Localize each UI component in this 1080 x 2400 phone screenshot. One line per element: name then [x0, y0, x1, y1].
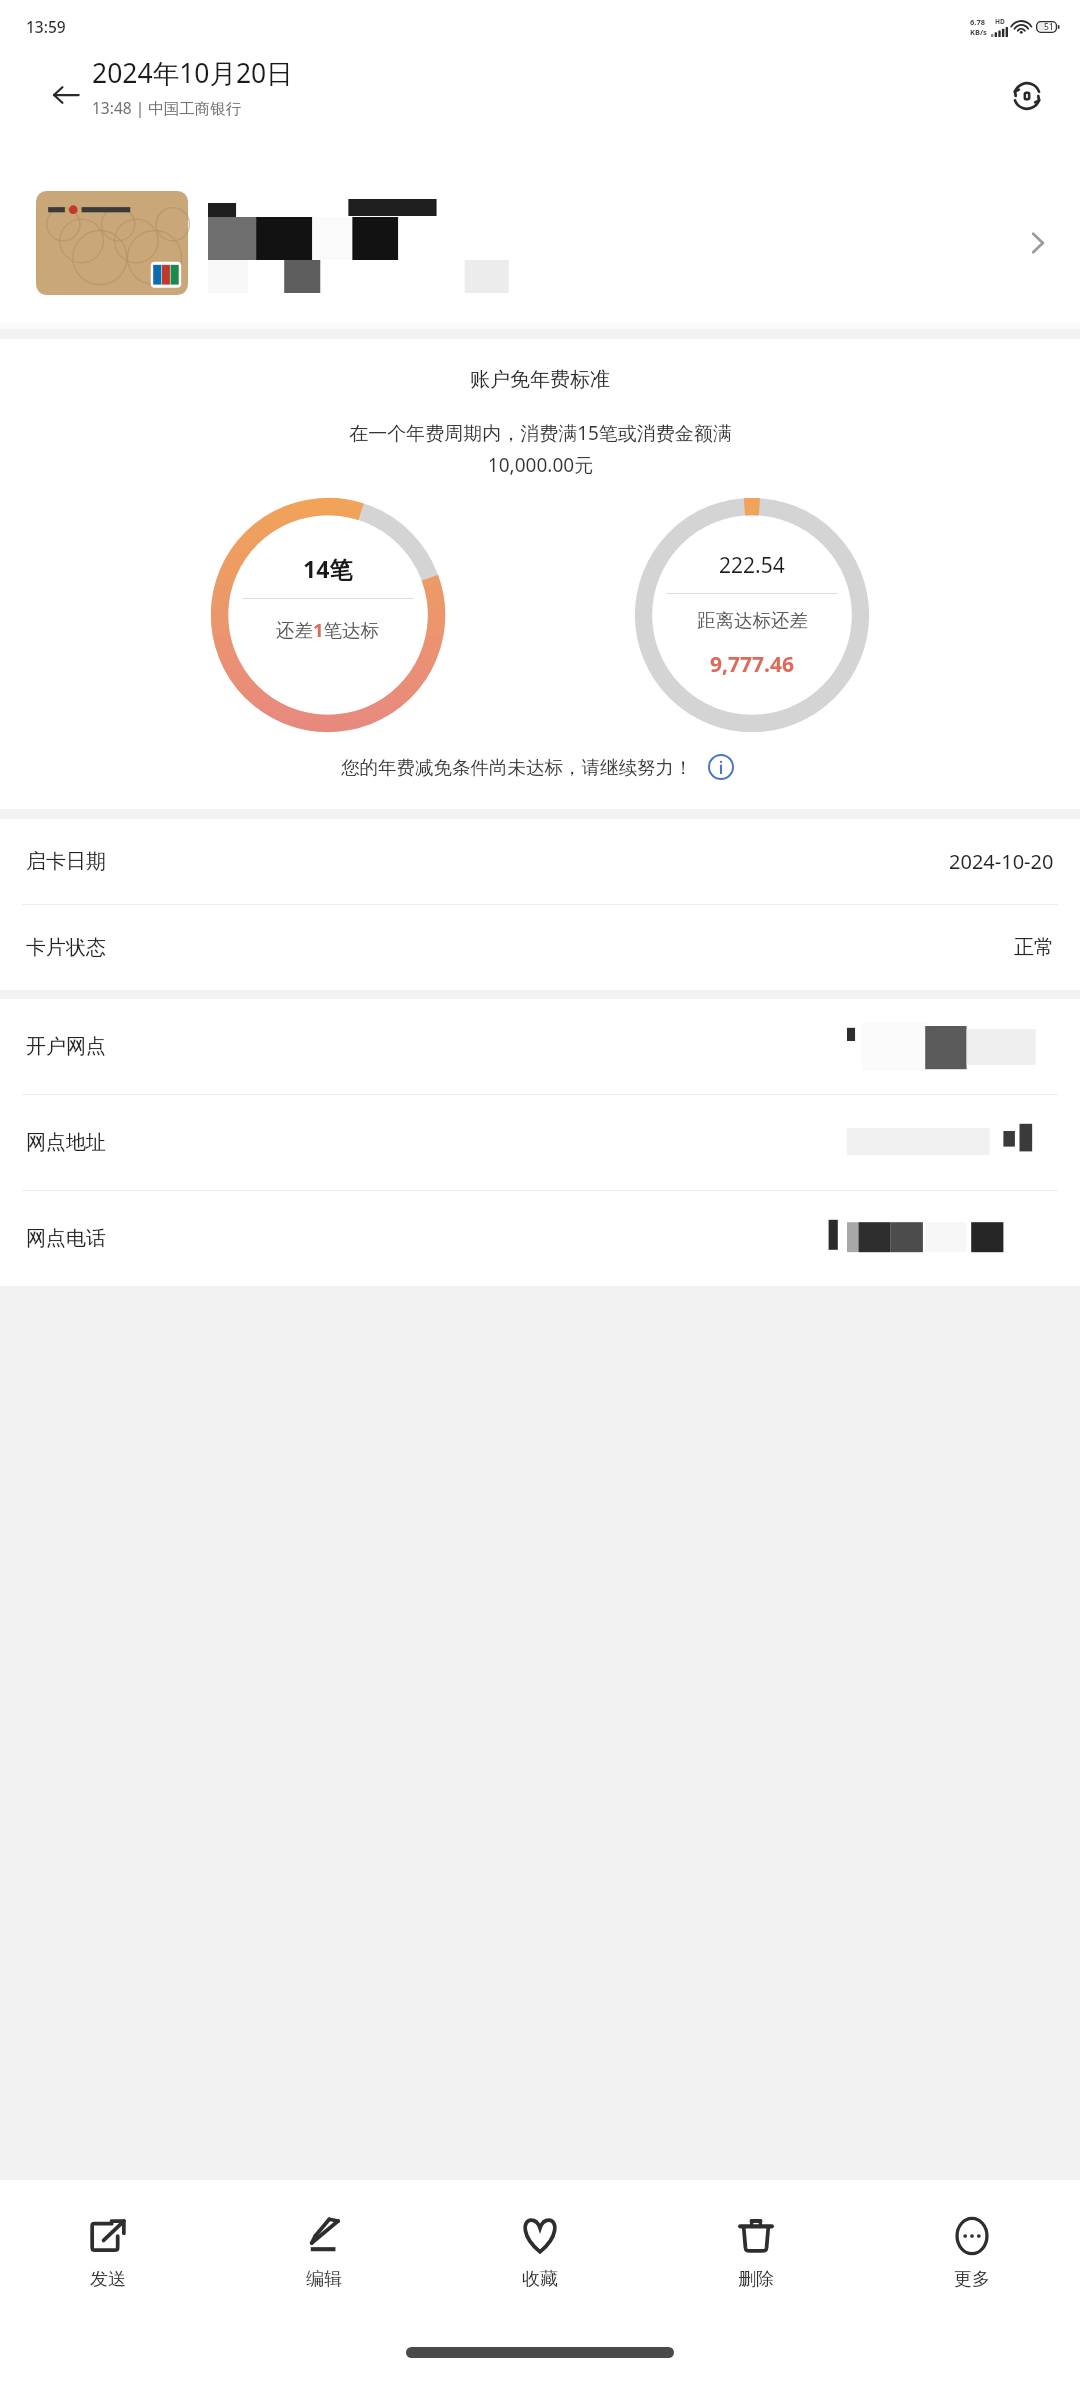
staticText: KB/s	[970, 27, 987, 37]
staticText: 正常	[1014, 935, 1054, 960]
button[interactable]: 返回	[40, 69, 92, 121]
button[interactable]: 收藏	[432, 2206, 648, 2299]
staticText: HD	[995, 17, 1005, 26]
staticText: 2024-10-20	[949, 848, 1054, 875]
button[interactable]: 启卡日期	[0, 819, 1080, 905]
staticText: 启卡日期	[26, 849, 106, 874]
staticText: 您的年费减免条件尚未达标，请继续努力！	[341, 756, 693, 779]
staticText: 2024年10月20日	[92, 55, 293, 91]
staticText: 距离达标还差	[697, 609, 808, 632]
staticText: 发送	[90, 2268, 126, 2291]
button[interactable]: 更多	[864, 2206, 1080, 2299]
staticText: 6.78	[970, 17, 985, 27]
button[interactable]: 编辑	[216, 2206, 432, 2299]
button[interactable]: 卡片状态	[0, 905, 1080, 990]
other: 查看	[1010, 215, 1066, 271]
button[interactable]: 说明	[703, 749, 739, 785]
staticText: 还差1笔达标	[276, 617, 380, 642]
button[interactable]: 删除	[648, 2206, 864, 2299]
staticText: 222.54	[719, 551, 785, 580]
button[interactable]: 发送	[0, 2206, 216, 2299]
staticText: 收藏	[522, 2268, 558, 2291]
button[interactable]: 查看	[0, 163, 1080, 323]
staticText: 更多	[954, 2268, 990, 2291]
staticText: 开户网点	[26, 1034, 106, 1059]
staticText: 13:59	[26, 16, 66, 37]
staticText: 51	[1044, 21, 1054, 33]
button[interactable]: 网点电话	[0, 1191, 1080, 1286]
button[interactable]: 网点地址	[0, 1095, 1080, 1191]
staticText: 9,777.46	[710, 650, 794, 679]
staticText: 卡片状态	[26, 935, 106, 960]
button[interactable]: 开户网点	[0, 999, 1080, 1095]
staticText: 网点电话	[26, 1226, 106, 1251]
staticText: 账户免年费标准	[470, 367, 610, 392]
staticText: 网点地址	[26, 1130, 106, 1155]
staticText: 14笔	[303, 553, 353, 584]
staticText: 13:48 | 中国工商银行	[92, 97, 242, 118]
staticText: 删除	[738, 2268, 774, 2291]
staticText: 编辑	[306, 2268, 342, 2291]
button[interactable]: 刷新	[1000, 69, 1054, 123]
staticText: 在一个年费周期内，消费满15笔或消费金额满 10,000.00元	[349, 420, 732, 477]
